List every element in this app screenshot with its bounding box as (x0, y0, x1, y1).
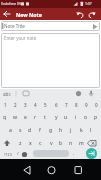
button[interactable]: 1 (0, 99, 10, 110)
staticText: g (49, 127, 53, 134)
staticText: 1 (4, 102, 7, 108)
staticText: h (59, 127, 63, 134)
button[interactable]: n (66, 138, 76, 149)
staticText: t (44, 114, 46, 121)
button[interactable]: / (13, 148, 23, 159)
staticText: 1:07 (85, 1, 92, 6)
button[interactable] (86, 148, 97, 159)
button[interactable]: ?123 (1, 149, 14, 160)
staticText: Vodafone IN (1, 1, 21, 6)
button[interactable]: i (71, 112, 81, 123)
button[interactable] (87, 11, 95, 18)
staticText: 2 (14, 102, 17, 108)
staticText: u (64, 114, 68, 121)
staticText: w (13, 114, 18, 121)
button[interactable]: 0 (91, 99, 101, 110)
staticText: n (69, 140, 73, 147)
button[interactable]: 9 (81, 99, 91, 110)
staticText: 8 (75, 102, 78, 108)
button[interactable]: 7 (61, 99, 71, 110)
staticText: j (70, 127, 72, 134)
button[interactable]: abc (0, 89, 16, 98)
staticText: r (34, 114, 37, 121)
button[interactable]: Note Title (1, 21, 100, 31)
staticText: New Note (16, 11, 42, 18)
button[interactable]: 8 (71, 99, 81, 110)
staticText: o (84, 114, 88, 121)
staticText: 3 (24, 102, 27, 108)
button[interactable]: d (25, 125, 35, 136)
button[interactable]: f (35, 125, 45, 136)
button[interactable]: x (25, 138, 35, 149)
button[interactable]: q (0, 112, 10, 123)
staticText: ?123 (4, 152, 12, 157)
button[interactable]: 2 (10, 99, 20, 110)
button[interactable]: Enter your note (1, 33, 100, 88)
staticText: 4 (34, 102, 37, 108)
staticText: . (73, 150, 75, 157)
staticText: a (9, 127, 12, 134)
button[interactable] (20, 149, 29, 160)
staticText: Enter your note (4, 35, 37, 41)
button[interactable]: 3 (20, 99, 30, 110)
button[interactable]: b (56, 138, 66, 149)
button[interactable]: h (56, 125, 66, 136)
staticText: z (19, 140, 22, 147)
staticText: 6 (55, 102, 58, 108)
button[interactable]: p (91, 112, 101, 123)
staticText: Note Title (4, 23, 25, 29)
button[interactable] (76, 11, 84, 18)
button[interactable]: 5 (40, 99, 50, 110)
staticText: v (50, 140, 53, 147)
button[interactable]: a (5, 125, 15, 136)
button[interactable] (70, 163, 84, 177)
button[interactable]: k (76, 125, 86, 136)
staticText: y (55, 114, 58, 121)
staticText: / (17, 151, 19, 157)
button[interactable]: e (20, 112, 30, 123)
staticText: 7 (65, 102, 68, 108)
button[interactable] (1, 138, 13, 149)
button[interactable]: c (35, 138, 45, 149)
button[interactable]: 4 (30, 99, 40, 110)
staticText: 5 (44, 102, 47, 108)
button[interactable] (1, 9, 13, 19)
button[interactable]: l (86, 125, 96, 136)
staticText: abc (3, 91, 11, 97)
button[interactable] (20, 163, 34, 177)
button[interactable] (86, 138, 98, 149)
button[interactable]: m (76, 138, 86, 149)
button[interactable]: w (10, 112, 20, 123)
button[interactable]: 6 (51, 99, 61, 110)
staticText: e (24, 114, 27, 121)
button[interactable]: . (69, 148, 79, 159)
staticText: 0 (95, 102, 98, 108)
staticText: 9 (85, 102, 88, 108)
button[interactable] (44, 163, 58, 177)
button[interactable]: s (15, 125, 25, 136)
staticText: i (75, 114, 77, 121)
staticText: m (79, 140, 84, 147)
button[interactable]: z (15, 138, 25, 149)
button[interactable]: v (46, 138, 56, 149)
staticText: p (94, 114, 98, 121)
staticText: s (19, 127, 22, 134)
staticText: l (90, 127, 92, 134)
button[interactable]: t (40, 112, 50, 123)
staticText: b (59, 140, 63, 147)
staticText: x (29, 140, 32, 147)
button[interactable]: y (51, 112, 61, 123)
button[interactable] (33, 150, 69, 157)
staticText: d (28, 127, 32, 134)
button[interactable]: r (30, 112, 40, 123)
button[interactable]: j (66, 125, 76, 136)
staticText: k (80, 127, 83, 134)
button[interactable]: u (61, 112, 71, 123)
button[interactable]: o (81, 112, 91, 123)
staticText: c (39, 140, 42, 147)
staticText: f (39, 127, 41, 134)
button[interactable]: g (46, 125, 56, 136)
staticText: q (3, 114, 7, 121)
